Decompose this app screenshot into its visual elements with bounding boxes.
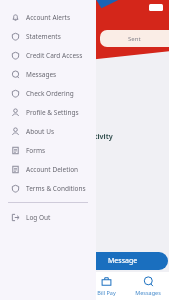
staticText: Check Ordering xyxy=(26,89,74,98)
button[interactable]: Check Ordering xyxy=(0,84,96,103)
button[interactable]: Bill Pay xyxy=(85,272,127,300)
button[interactable]: Message xyxy=(78,252,168,270)
staticText: Messages xyxy=(26,70,57,79)
button[interactable]: Profile & Settings xyxy=(0,103,96,122)
staticText: Bill Pay xyxy=(97,289,116,296)
button[interactable]: Statements xyxy=(0,27,96,46)
button[interactable]: About Us xyxy=(0,122,96,141)
staticText: Account Alerts xyxy=(26,13,71,22)
button[interactable]: Forms xyxy=(0,141,96,160)
staticText: Terms & Conditions xyxy=(26,184,86,193)
button[interactable]: Messages xyxy=(127,272,169,300)
button[interactable]: Log Out xyxy=(0,208,96,227)
staticText: Activity xyxy=(86,132,113,142)
staticText: Messages xyxy=(135,289,161,296)
staticText: About Us xyxy=(26,127,55,136)
button[interactable]: Terms & Conditions xyxy=(0,179,96,198)
staticText: Sent xyxy=(128,35,141,43)
button[interactable]: Sent xyxy=(100,30,169,47)
staticText: Message xyxy=(108,256,138,266)
button[interactable]: Messages xyxy=(0,65,96,84)
staticText: Profile & Settings xyxy=(26,108,79,117)
button[interactable]: Credit Card Access xyxy=(0,46,96,65)
button[interactable]: Account Alerts xyxy=(0,8,96,27)
staticText: Credit Card Access xyxy=(26,51,83,60)
staticText: Log Out xyxy=(26,213,51,222)
staticText: Account Deletion xyxy=(26,165,79,174)
button[interactable]: Account Deletion xyxy=(0,160,96,179)
staticText: Forms xyxy=(26,146,46,155)
staticText: Statements xyxy=(26,32,61,41)
